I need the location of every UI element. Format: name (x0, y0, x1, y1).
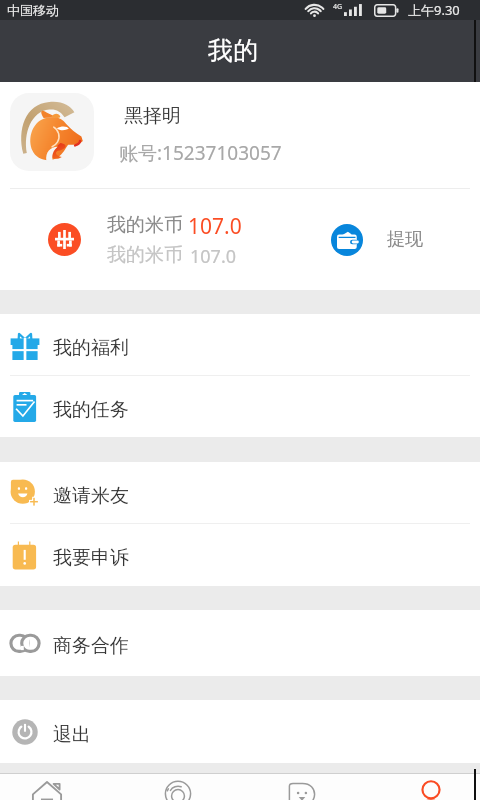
staticText: 邀请米友 (53, 484, 129, 508)
button[interactable]: 提现 (320, 189, 480, 290)
staticText: 107.0 (190, 244, 237, 269)
staticText: 商务合作 (53, 634, 129, 658)
button[interactable]: 黑择明 (0, 82, 480, 188)
staticText: 107.0 (188, 212, 242, 241)
button[interactable]: Discover (148, 773, 208, 800)
staticText: 中国移动 (7, 2, 59, 18)
button[interactable]: Home (17, 773, 77, 800)
button[interactable]: Mine (401, 773, 461, 800)
staticText: 我的任务 (53, 398, 129, 422)
staticText: 我的米币 (107, 243, 183, 267)
button[interactable]: 我的任务 (0, 376, 480, 437)
staticText: 提现 (387, 228, 423, 251)
button[interactable]: Friends (272, 773, 332, 800)
button[interactable]: 商务合作 (0, 610, 480, 676)
staticText: 退出 (53, 723, 91, 747)
button[interactable]: 我的福利 (0, 314, 480, 375)
staticText: 我的 (208, 35, 258, 66)
staticText: 4G (333, 2, 343, 12)
button[interactable]: 邀请米友 (0, 462, 480, 523)
staticText: 我的米币 (107, 213, 183, 237)
staticText: 我的福利 (53, 336, 129, 360)
staticText: 账号:15237103057 (119, 140, 282, 166)
staticText: 黑择明 (124, 104, 181, 128)
button[interactable]: 我的米币 (0, 189, 320, 290)
button[interactable]: 我要申诉 (0, 524, 480, 586)
staticText: 我要申诉 (53, 546, 129, 570)
staticText: 上午9.30 (408, 1, 460, 19)
button[interactable]: 退出 (0, 700, 480, 763)
